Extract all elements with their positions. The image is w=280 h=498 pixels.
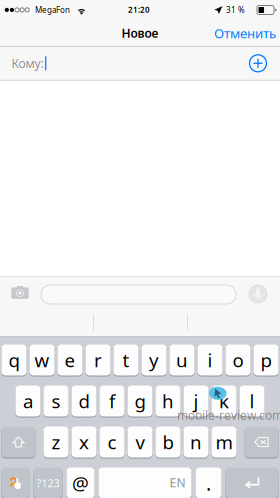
staticText: c <box>107 430 116 454</box>
button[interactable]: d <box>71 385 96 417</box>
staticText: z <box>51 430 60 454</box>
button[interactable]: Record audio message <box>249 285 267 303</box>
staticText: w <box>34 348 49 372</box>
button[interactable]: e <box>57 344 82 376</box>
staticText: mobile-review.com <box>177 407 280 423</box>
staticText: f <box>109 389 115 413</box>
button[interactable]: n <box>183 426 208 458</box>
staticText: . <box>206 470 211 496</box>
button[interactable]: z <box>43 426 68 458</box>
button[interactable]: Отменить <box>204 20 276 46</box>
staticText: q <box>8 348 19 372</box>
button[interactable] <box>1 426 35 458</box>
button[interactable]: . <box>195 467 221 498</box>
staticText: Отменить <box>214 24 276 42</box>
staticText: a <box>23 389 33 413</box>
staticText: u <box>176 348 188 372</box>
button[interactable]: s <box>43 385 68 417</box>
staticText: j <box>193 389 198 413</box>
button[interactable]: EN <box>98 467 191 498</box>
button[interactable]: k <box>211 385 236 417</box>
button[interactable]: u <box>169 344 194 376</box>
button[interactable]: i <box>197 344 222 376</box>
button[interactable] <box>225 467 278 498</box>
staticText: ?123 <box>36 476 59 490</box>
staticText: Кому: <box>11 55 43 71</box>
button[interactable]: y <box>141 344 166 376</box>
staticText: m <box>215 430 232 454</box>
staticText: d <box>78 389 89 413</box>
staticText: r <box>94 348 102 372</box>
button[interactable]: w <box>29 344 54 376</box>
button[interactable]: c <box>99 426 124 458</box>
button[interactable]: Camera <box>11 285 29 299</box>
button[interactable]: Add contact <box>247 52 269 74</box>
button[interactable]: a <box>15 385 40 417</box>
button[interactable]: h <box>155 385 180 417</box>
button[interactable]: b <box>155 426 180 458</box>
staticText: s <box>51 389 60 413</box>
staticText: p <box>260 348 271 372</box>
staticText: x <box>79 430 89 454</box>
button[interactable]: l <box>239 385 264 417</box>
staticText: @ <box>72 471 89 495</box>
button[interactable] <box>244 426 278 458</box>
button[interactable]: m <box>211 426 236 458</box>
staticText: n <box>190 430 202 454</box>
button[interactable]: ?123 <box>33 467 62 498</box>
button[interactable] <box>1 467 29 498</box>
staticText: o <box>232 348 243 372</box>
button[interactable]: t <box>113 344 138 376</box>
staticText: EN <box>169 474 185 490</box>
staticText: MegaFon <box>35 5 70 15</box>
staticText: i <box>207 348 212 372</box>
staticText: 21:20 <box>128 4 150 15</box>
staticText: Новое <box>121 25 158 41</box>
staticText: t <box>122 348 129 372</box>
staticText: v <box>135 430 144 454</box>
button[interactable]: f <box>99 385 124 417</box>
button[interactable]: o <box>225 344 250 376</box>
staticText: b <box>162 430 173 454</box>
button[interactable]: q <box>1 344 26 376</box>
button[interactable]: x <box>71 426 96 458</box>
staticText: l <box>249 389 254 413</box>
button[interactable]: r <box>85 344 110 376</box>
staticText: k <box>219 389 229 413</box>
button[interactable]: @ <box>66 467 94 498</box>
staticText: y <box>149 348 159 372</box>
button[interactable]: p <box>253 344 278 376</box>
staticText: g <box>134 389 145 413</box>
staticText: 31 % <box>226 5 245 15</box>
staticText: h <box>162 389 174 413</box>
staticText: e <box>64 348 75 372</box>
button[interactable]: v <box>127 426 152 458</box>
button[interactable]: g <box>127 385 152 417</box>
button[interactable]: j <box>183 385 208 417</box>
